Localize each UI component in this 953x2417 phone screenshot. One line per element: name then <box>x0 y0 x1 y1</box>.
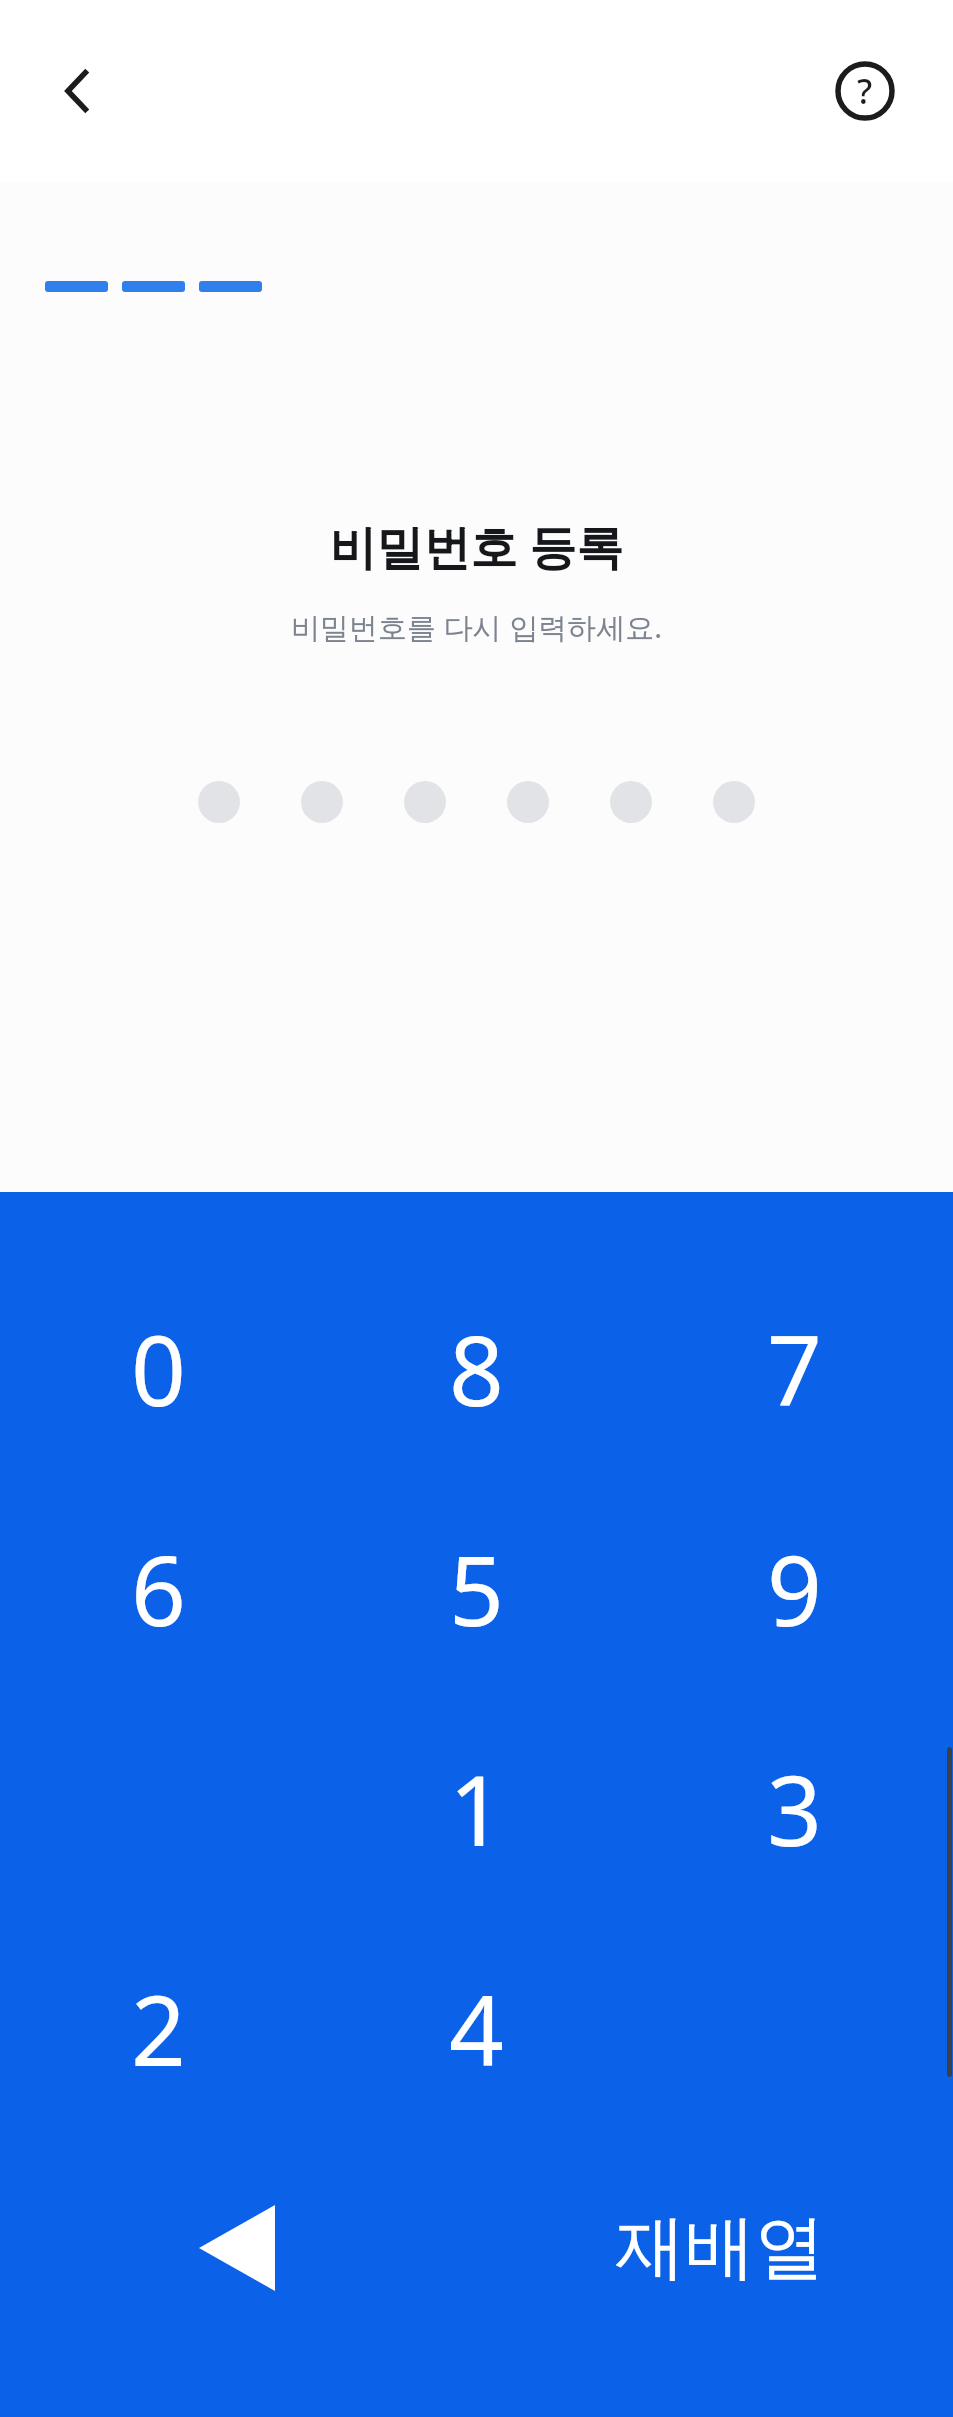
button[interactable]: 4 <box>317 1918 635 2138</box>
button[interactable]: 5 <box>317 1478 635 1698</box>
button[interactable]: Backspace <box>0 2138 317 2358</box>
button[interactable]: 6 <box>0 1478 317 1698</box>
button[interactable]: 3 <box>635 1698 953 1918</box>
button[interactable]: Help <box>813 39 917 143</box>
button[interactable]: 재배열 <box>635 2138 953 2358</box>
staticText: ? <box>857 68 873 114</box>
staticText: 8 <box>449 1303 504 1434</box>
button[interactable]: Back <box>26 39 130 143</box>
staticText: 비밀번호 등록 <box>329 514 624 578</box>
staticText: 2 <box>131 1963 186 2094</box>
staticText: 4 <box>449 1963 504 2094</box>
staticText: 1 <box>449 1743 504 1874</box>
staticText: 0 <box>131 1303 186 1434</box>
staticText: 6 <box>131 1523 186 1654</box>
button[interactable]: 2 <box>0 1918 317 2138</box>
staticText: 비밀번호를 다시 입력하세요. <box>291 607 662 647</box>
staticText: 7 <box>767 1303 822 1434</box>
button[interactable]: 8 <box>317 1258 635 1478</box>
button[interactable]: 9 <box>635 1478 953 1698</box>
staticText: 3 <box>767 1743 822 1874</box>
staticText: 5 <box>449 1523 504 1654</box>
button[interactable]: 7 <box>635 1258 953 1478</box>
staticText: 재배열 <box>615 2204 825 2292</box>
button[interactable]: 0 <box>0 1258 317 1478</box>
button[interactable]: 1 <box>317 1698 635 1918</box>
staticText: 9 <box>767 1523 822 1654</box>
